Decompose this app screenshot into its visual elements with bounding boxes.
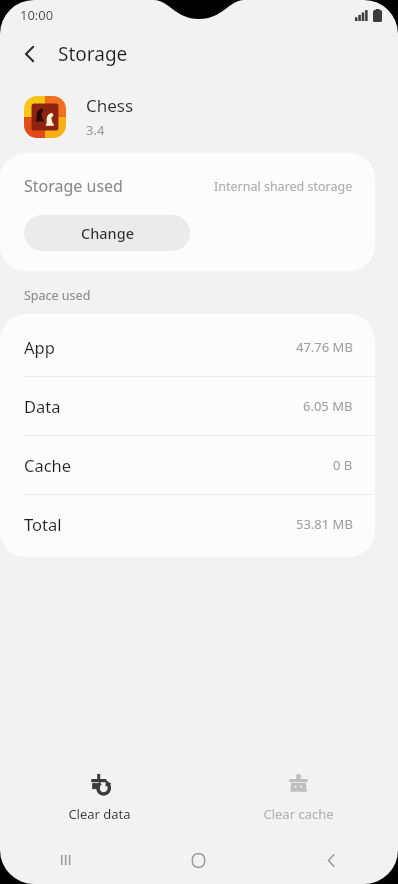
staticText: Space used bbox=[24, 287, 91, 304]
button[interactable]: Clear data bbox=[40, 767, 159, 829]
staticText: Storage used bbox=[24, 175, 123, 197]
staticText: Cache bbox=[24, 454, 72, 476]
button[interactable]: App bbox=[0, 318, 375, 376]
button[interactable]: Back bbox=[8, 32, 52, 76]
button[interactable]: Back bbox=[265, 836, 398, 884]
staticText: App bbox=[24, 336, 55, 358]
staticText: Chess bbox=[86, 94, 134, 117]
staticText: 47.76 MB bbox=[296, 338, 353, 356]
staticText: Total bbox=[24, 513, 62, 535]
button[interactable]: Clear cache bbox=[235, 767, 362, 829]
button[interactable]: Home bbox=[132, 836, 265, 884]
staticText: 3.4 bbox=[86, 121, 105, 139]
staticText: Data bbox=[24, 395, 61, 417]
staticText: 6.05 MB bbox=[303, 397, 353, 415]
other: Clear data bbox=[88, 773, 111, 796]
staticText: Storage bbox=[58, 41, 128, 67]
button[interactable]: Recents bbox=[0, 836, 132, 884]
staticText: Clear data bbox=[68, 805, 131, 823]
staticText: Change bbox=[81, 223, 134, 243]
staticText: 53.81 MB bbox=[296, 515, 353, 533]
button[interactable]: Total bbox=[0, 495, 375, 553]
button[interactable]: Cache bbox=[0, 436, 375, 494]
button[interactable]: Data bbox=[0, 377, 375, 435]
other: Clear cache bbox=[287, 773, 310, 796]
button[interactable]: Change bbox=[24, 215, 190, 251]
staticText: 10:00 bbox=[20, 6, 54, 24]
staticText: Internal shared storage bbox=[214, 178, 353, 195]
staticText: Clear cache bbox=[263, 805, 334, 823]
staticText: 0 B bbox=[333, 456, 353, 474]
